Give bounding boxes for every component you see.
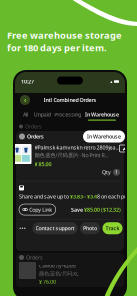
staticText: In Warehouse [87, 133, 121, 140]
button[interactable]: Photo [80, 222, 100, 234]
button[interactable]: Copy Link [19, 204, 56, 215]
staticText: Photo [83, 225, 97, 232]
staticText: #Palmsk·kamvnskn retro 2809jea… [34, 144, 119, 151]
staticText: Copy Link [29, 206, 52, 213]
staticText: Track [105, 225, 119, 232]
staticText: Qty [102, 169, 111, 176]
staticText: Contact support [35, 225, 74, 232]
button[interactable]: In Warehouse [85, 111, 119, 122]
staticText: for 180 days per item. [7, 41, 107, 54]
staticText: ‹ [24, 96, 26, 104]
button[interactable]: Track [102, 222, 122, 234]
staticText: Orders [26, 254, 43, 261]
staticText: 1 [115, 169, 118, 176]
staticText: In Warehouse [85, 111, 119, 118]
staticText: 8 on each purchase! [97, 193, 137, 200]
staticText: Orders [27, 133, 44, 140]
staticText: Unpaid [34, 111, 51, 118]
button[interactable]: In Warehouse [83, 130, 125, 143]
staticText: 10:27 [21, 78, 34, 85]
button[interactable]: All [21, 111, 30, 122]
staticText: Intl Combined Orders [43, 96, 96, 104]
staticText: 颜色:蓝色/尺码:XL [39, 270, 79, 277]
staticText: ¥ 85.00 [34, 161, 51, 168]
staticText: 颜色:蓝色/尺码:图片 · No Print R… [34, 152, 108, 159]
staticText: Share and save up to [19, 193, 70, 200]
button[interactable]: Back [20, 95, 30, 105]
button[interactable]: More [17, 224, 27, 233]
staticText: Save [71, 206, 83, 213]
button[interactable]: Processing [54, 111, 81, 122]
staticText: ¥85.00 ($12.32) [84, 206, 121, 213]
staticText: самое лучшее [39, 262, 76, 269]
staticText: Processing [54, 111, 81, 118]
staticText: Free warehouse storage [7, 29, 122, 41]
staticText: ¥3.83~ ¥3.4 [70, 193, 97, 200]
staticText: ¥ 76.00 [39, 278, 56, 285]
staticText: Orders [25, 123, 42, 130]
button[interactable]: Edit [119, 144, 128, 153]
button[interactable]: Unpaid [34, 111, 51, 122]
button[interactable]: Contact support [32, 222, 77, 234]
staticText: All [23, 111, 28, 118]
staticText: ▴ [110, 78, 113, 85]
